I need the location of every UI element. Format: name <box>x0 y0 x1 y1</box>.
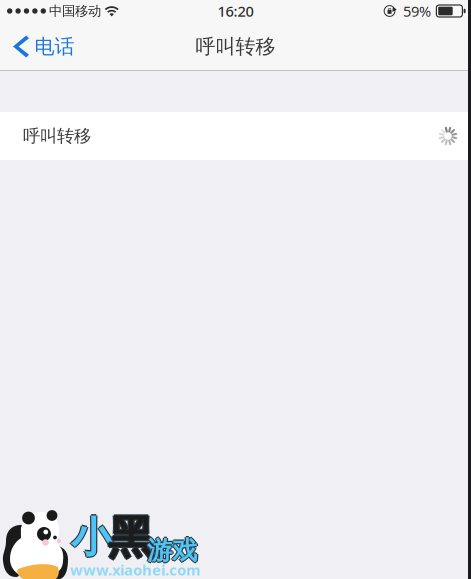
staticText: 呼叫转移 <box>195 34 275 59</box>
staticText: 黑 <box>109 510 154 566</box>
staticText: 中国移动 <box>49 3 101 19</box>
staticText: 黑 <box>107 510 152 566</box>
staticText: 呼叫转移 <box>23 125 91 147</box>
staticText: 小 <box>72 512 113 563</box>
staticText: 游戏 <box>148 535 198 566</box>
button[interactable]: 呼叫转移 <box>0 112 471 160</box>
staticText: www.xiaohei.com <box>70 560 200 579</box>
staticText: 黑 <box>108 509 153 564</box>
staticText: 小 <box>71 511 112 561</box>
staticText: 黑 <box>108 511 153 567</box>
staticText: 游戏 <box>147 536 197 567</box>
staticText: 16:20 <box>217 1 253 21</box>
staticText: 小 <box>71 512 112 563</box>
staticText: 小 <box>70 512 111 563</box>
staticText: 59% <box>403 1 431 21</box>
staticText: 游戏 <box>147 535 197 566</box>
staticText: 电话 <box>34 34 74 59</box>
staticText: 游戏 <box>146 535 196 566</box>
staticText: 黑 <box>108 510 153 566</box>
button[interactable]: 电话 <box>0 26 84 67</box>
staticText: 游戏 <box>147 534 197 565</box>
staticText: 小 <box>71 513 112 564</box>
